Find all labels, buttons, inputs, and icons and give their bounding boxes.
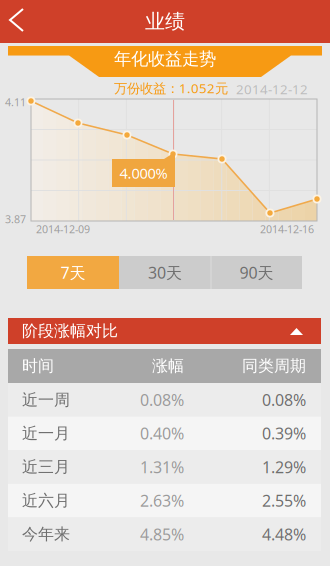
staticText: 0.08%: [140, 389, 184, 410]
staticText: 2014-12-16: [260, 222, 314, 236]
staticText: 30天: [148, 262, 182, 283]
staticText: 4.11: [5, 95, 26, 109]
staticText: 同类周期: [242, 356, 306, 376]
staticText: 阶段涨幅对比: [22, 321, 118, 341]
staticText: 业绩: [145, 9, 185, 34]
staticText: 近一月: [22, 424, 70, 443]
staticText: 近一周: [22, 390, 70, 410]
staticText: 3.87: [5, 212, 26, 226]
staticText: 今年来: [22, 524, 70, 544]
staticText: 4.48%: [262, 524, 306, 545]
button[interactable]: 30天: [119, 256, 211, 289]
staticText: 0.08%: [262, 389, 306, 410]
staticText: 2014-12-12: [236, 80, 308, 98]
staticText: 1.31%: [140, 456, 184, 478]
button[interactable]: 阶段涨幅对比: [8, 318, 321, 344]
staticText: 近六月: [22, 491, 70, 510]
staticText: 7天: [60, 262, 85, 283]
staticText: 1.29%: [262, 456, 306, 478]
staticText: 时间: [22, 356, 54, 376]
staticText: 0.39%: [262, 423, 306, 444]
button[interactable]: Back: [0, 0, 44, 43]
staticText: 2.63%: [140, 490, 184, 511]
button[interactable]: 90天: [211, 256, 302, 289]
staticText: 4.000%: [119, 163, 167, 183]
staticText: 近三月: [22, 457, 70, 477]
staticText: 4.85%: [140, 524, 184, 545]
button[interactable]: 7天: [27, 256, 119, 289]
staticText: 年化收益走势: [114, 48, 216, 70]
staticText: 0.40%: [140, 423, 184, 444]
staticText: 涨幅: [152, 356, 184, 376]
staticText: 90天: [239, 262, 273, 283]
staticText: 2014-12-09: [36, 222, 90, 236]
staticText: 万份收益：1.052元: [114, 79, 228, 97]
staticText: 2.55%: [262, 490, 306, 511]
